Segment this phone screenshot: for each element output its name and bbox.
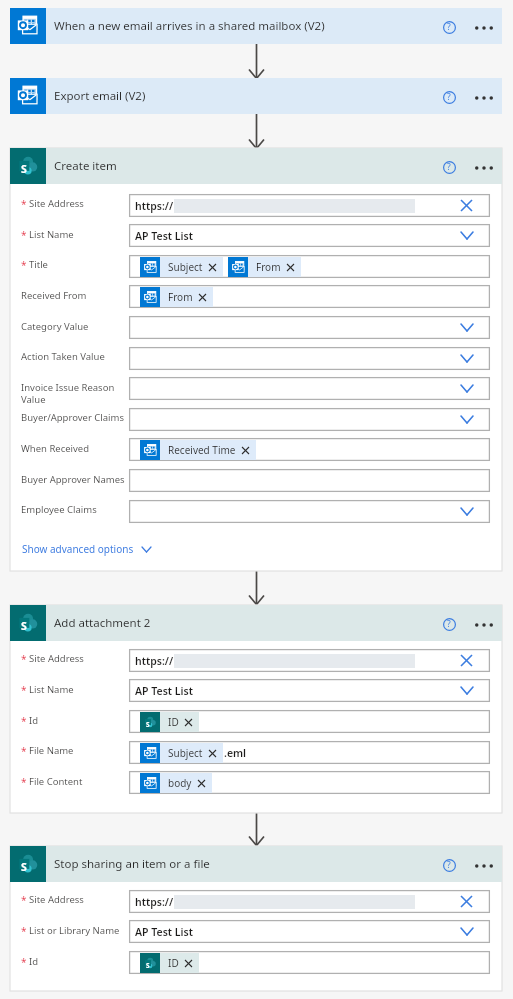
button[interactable]: S: [10, 148, 502, 184]
staticText: https://: [135, 199, 174, 213]
staticText: *: [21, 893, 27, 907]
staticText: S: [21, 860, 27, 874]
staticText: Add attachment 2: [54, 615, 439, 631]
staticText: Export email (V2): [54, 88, 439, 104]
staticText: S: [146, 720, 150, 729]
button[interactable]: [129, 377, 490, 400]
staticText: https://: [135, 895, 174, 909]
button[interactable]: Show advanced options: [22, 542, 151, 556]
button[interactable]: [129, 500, 490, 523]
staticText: AP Test List: [135, 229, 193, 243]
staticText: S: [21, 162, 27, 176]
staticText: File Name: [29, 744, 74, 757]
staticText: *: [21, 228, 27, 242]
staticText: Id: [29, 955, 39, 968]
staticText: body: [168, 776, 192, 790]
button[interactable]: S: [10, 605, 502, 641]
staticText: List or Library Name: [29, 924, 120, 937]
staticText: Received From: [21, 289, 87, 302]
button[interactable]: S: [140, 712, 199, 732]
staticText: When Received: [21, 442, 90, 455]
button[interactable]: AP Test List: [129, 679, 490, 702]
staticText: S: [21, 619, 27, 633]
button[interactable]: Help: [437, 155, 461, 179]
staticText: From: [168, 290, 193, 304]
button[interactable]: S: [10, 846, 502, 882]
staticText: *: [21, 258, 27, 272]
staticText: File Content: [29, 775, 83, 788]
button[interactable]: Help: [437, 15, 461, 39]
staticText: Stop sharing an item or a file: [54, 856, 439, 872]
staticText: .eml: [224, 746, 247, 760]
staticText: Buyer Approver Names: [21, 473, 125, 486]
button[interactable]: body: [140, 773, 212, 793]
staticText: ?: [447, 859, 451, 871]
button[interactable]: S: [129, 710, 490, 733]
staticText: *: [21, 652, 27, 666]
staticText: ?: [447, 161, 451, 173]
staticText: When a new email arrives in a shared mai…: [54, 18, 439, 34]
staticText: Id: [29, 714, 39, 727]
button[interactable]: AP Test List: [129, 224, 490, 247]
button[interactable]: S: [140, 953, 199, 973]
staticText: List Name: [29, 683, 74, 696]
button[interactable]: From: [140, 287, 213, 307]
button[interactable]: More options: [471, 13, 497, 39]
button[interactable]: https://: [129, 194, 490, 217]
staticText: ID: [168, 715, 179, 729]
staticText: Create item: [54, 158, 439, 174]
staticText: Site Address: [29, 197, 84, 210]
staticText: *: [21, 744, 27, 758]
button[interactable]: [129, 316, 490, 339]
button[interactable]: [129, 347, 490, 370]
staticText: https://: [135, 654, 174, 668]
button[interactable]: Help: [437, 85, 461, 109]
staticText: *: [21, 924, 27, 938]
staticText: Buyer/Approver Claims: [21, 411, 124, 424]
button[interactable]: AP Test List: [129, 920, 490, 943]
button[interactable]: Help: [437, 612, 461, 636]
button[interactable]: https://: [129, 649, 490, 672]
button[interactable]: [129, 469, 490, 492]
button[interactable]: S: [129, 951, 490, 974]
staticText: *: [21, 775, 27, 789]
button[interactable]: From: [129, 285, 490, 308]
staticText: Subject: [168, 746, 203, 760]
staticText: Invoice Issue Reason Value: [21, 381, 129, 406]
button[interactable]: Subject: [140, 257, 223, 277]
button[interactable]: Export email (V2): [10, 78, 502, 114]
staticText: Subject: [168, 260, 203, 274]
staticText: Received Time: [168, 443, 236, 457]
button[interactable]: https://: [129, 890, 490, 913]
staticText: Site Address: [29, 893, 84, 906]
button[interactable]: Subject: [140, 743, 223, 763]
staticText: ?: [447, 618, 451, 630]
button[interactable]: More options: [471, 153, 497, 179]
button[interactable]: From: [228, 257, 301, 277]
button[interactable]: Subject: [129, 255, 490, 278]
button[interactable]: body: [129, 771, 490, 794]
staticText: Action Taken Value: [21, 350, 105, 363]
button[interactable]: When a new email arrives in a shared mai…: [10, 8, 502, 44]
button[interactable]: More options: [471, 610, 497, 636]
button[interactable]: Received Time: [140, 440, 256, 460]
staticText: List Name: [29, 228, 74, 241]
button[interactable]: More options: [471, 851, 497, 877]
staticText: ?: [447, 91, 451, 103]
button[interactable]: Subject: [129, 741, 490, 764]
button[interactable]: Received Time: [129, 438, 490, 461]
button[interactable]: More options: [471, 83, 497, 109]
staticText: *: [21, 714, 27, 728]
staticText: AP Test List: [135, 684, 193, 698]
staticText: AP Test List: [135, 925, 193, 939]
staticText: ?: [447, 21, 451, 33]
staticText: *: [21, 955, 27, 969]
button[interactable]: [129, 408, 490, 431]
staticText: Employee Claims: [21, 503, 97, 516]
button[interactable]: Help: [437, 853, 461, 877]
staticText: From: [256, 260, 281, 274]
staticText: *: [21, 683, 27, 697]
staticText: Site Address: [29, 652, 84, 665]
staticText: ID: [168, 956, 179, 970]
staticText: Category Value: [21, 320, 89, 333]
